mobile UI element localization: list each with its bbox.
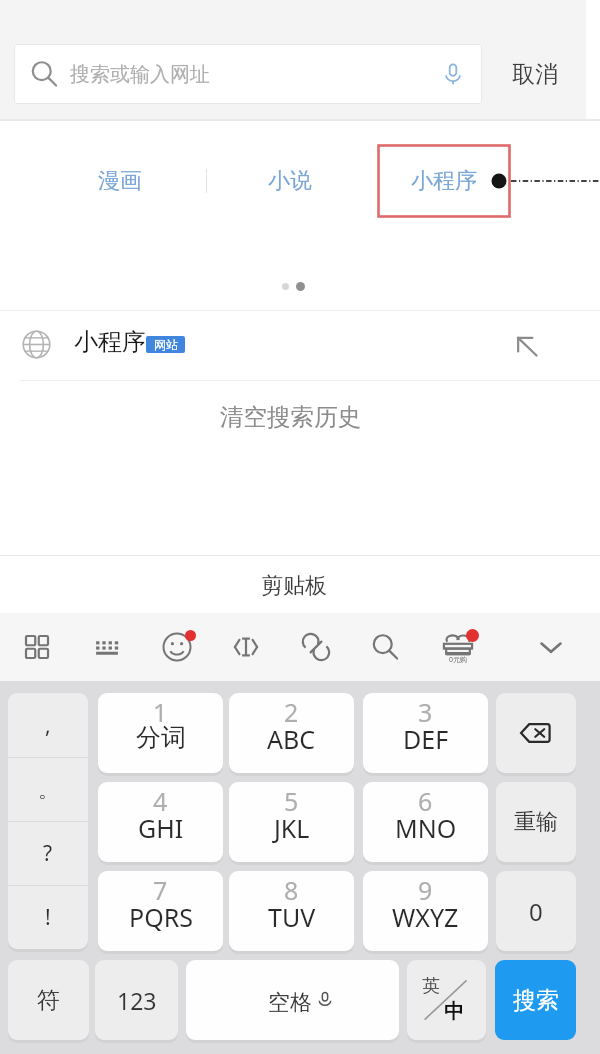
staticText: ? — [43, 839, 53, 868]
button[interactable]: 123 — [95, 960, 178, 1040]
staticText: DEF — [403, 722, 449, 756]
staticText: 分词 — [136, 722, 186, 753]
staticText: 空格 — [268, 989, 312, 1017]
staticText: TUV — [268, 900, 316, 934]
button[interactable]: 漫画 — [62, 154, 178, 208]
button[interactable]: 1 — [98, 693, 223, 773]
staticText: 中 — [444, 999, 464, 1024]
staticText: 搜索或输入网址 — [70, 62, 210, 87]
button[interactable]: 小程序 — [386, 154, 502, 208]
staticText: 5 — [284, 784, 299, 818]
button[interactable]: 5 — [229, 782, 354, 862]
staticText: GHI — [138, 811, 184, 845]
button[interactable]: 取消 — [486, 44, 583, 104]
button[interactable]: English Chinese toggle — [407, 960, 486, 1040]
staticText: ! — [45, 903, 51, 932]
staticText: 取消 — [512, 60, 558, 89]
staticText: , — [45, 711, 51, 740]
button[interactable]: 小说 — [232, 154, 348, 208]
staticText: 网站 — [154, 337, 178, 352]
staticText: 符 — [37, 986, 60, 1015]
button[interactable]: , — [8, 693, 88, 757]
staticText: MNO — [395, 811, 457, 845]
button[interactable]: Keyboard — [75, 613, 139, 681]
button[interactable]: Emoji — [145, 613, 209, 681]
button[interactable]: 2 — [229, 693, 354, 773]
button[interactable]: Insert into search box — [508, 327, 546, 365]
button[interactable]: Backspace — [496, 693, 576, 773]
button[interactable]: 8 — [229, 871, 354, 951]
staticText: 清空搜索历史 — [220, 402, 361, 432]
staticText: JKL — [274, 811, 310, 845]
button[interactable]: Apps — [5, 613, 69, 681]
button[interactable]: 0 — [496, 871, 576, 951]
button[interactable]: 搜索 — [495, 960, 576, 1040]
staticText: 7 — [153, 873, 168, 907]
staticText: 小程序 — [411, 167, 477, 195]
button[interactable]: Cursor — [214, 613, 278, 681]
staticText: 1 — [153, 695, 168, 729]
button[interactable]: 清空搜索历史 — [0, 386, 600, 446]
staticText: ABC — [267, 722, 316, 756]
button[interactable]: ! — [8, 886, 88, 949]
staticText: 8 — [284, 873, 299, 907]
button[interactable]: Symbols — [8, 960, 89, 1040]
staticText: 重输 — [514, 808, 558, 836]
button[interactable]: 9 — [363, 871, 488, 951]
staticText: 3 — [418, 695, 433, 729]
staticText: 英 — [422, 975, 440, 998]
staticText: WXYZ — [392, 900, 459, 934]
button[interactable]: 6 — [363, 782, 488, 862]
button[interactable]: 小程序 — [0, 311, 600, 380]
button[interactable]: 空格 — [186, 960, 399, 1040]
button[interactable]: 7 — [98, 871, 223, 951]
button[interactable]: ? — [8, 822, 88, 885]
staticText: 9 — [418, 873, 433, 907]
staticText: 剪贴板 — [261, 572, 327, 600]
button[interactable]: 。 — [8, 758, 88, 821]
staticText: 漫画 — [98, 167, 142, 195]
button[interactable]: Retype — [496, 782, 576, 862]
button[interactable]: Gift — [426, 613, 490, 681]
button[interactable]: Collapse keyboard — [519, 613, 583, 681]
staticText: 小说 — [268, 167, 312, 195]
button[interactable]: Clipboard — [284, 613, 348, 681]
staticText: 小程序 — [74, 327, 146, 357]
button[interactable]: 剪贴板 — [0, 556, 600, 613]
staticText: 0 — [529, 895, 543, 928]
staticText: 4 — [153, 784, 168, 818]
button[interactable]: 3 — [363, 693, 488, 773]
button[interactable]: 搜索或输入网址 — [14, 44, 482, 104]
button[interactable]: Search — [353, 613, 417, 681]
staticText: PQRS — [129, 900, 193, 934]
staticText: 0元购 — [449, 655, 468, 665]
staticText: 。 — [38, 777, 59, 803]
staticText: 6 — [418, 784, 433, 818]
button[interactable]: 4 — [98, 782, 223, 862]
staticText: 2 — [284, 695, 299, 729]
staticText: 123 — [117, 985, 157, 1016]
staticText: 搜索 — [513, 986, 559, 1015]
